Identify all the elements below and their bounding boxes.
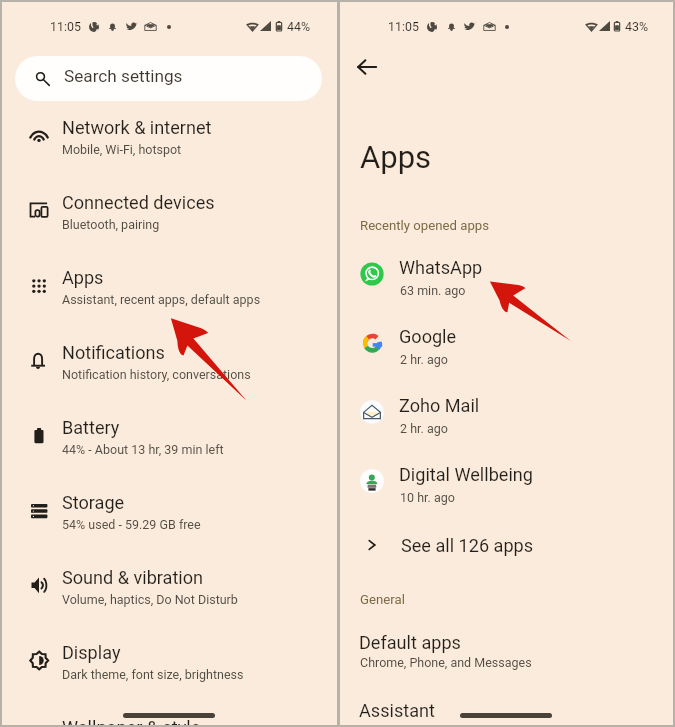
staticText: 54% used - 59.29 GB free: [62, 517, 201, 532]
staticText: 43%: [625, 19, 649, 34]
staticText: Notification history, conversations: [62, 367, 251, 382]
button[interactable]: [0, 627, 337, 702]
staticText: Apps: [360, 139, 432, 175]
staticText: Display: [62, 642, 121, 663]
staticText: Default apps: [359, 632, 461, 653]
button[interactable]: [341, 620, 675, 672]
staticText: Assistant, recent apps, default apps: [62, 292, 261, 307]
staticText: See all 126 apps: [401, 535, 534, 556]
staticText: Digital Wellbeing: [399, 464, 533, 485]
button[interactable]: [341, 516, 675, 564]
button[interactable]: [0, 252, 337, 327]
staticText: Battery: [62, 417, 120, 438]
staticText: Zoho Mail: [399, 395, 480, 416]
staticText: 11:05: [50, 19, 81, 34]
staticText: Dark theme, font size, brightness: [62, 667, 244, 682]
staticText: 44% - About 13 hr, 39 min left: [62, 442, 224, 457]
staticText: 44%: [287, 19, 311, 34]
button[interactable]: [341, 244, 675, 312]
button[interactable]: [0, 477, 337, 552]
button[interactable]: [0, 327, 337, 402]
button[interactable]: [0, 177, 337, 252]
staticText: Storage: [62, 492, 125, 513]
staticText: Assistant: [359, 700, 435, 721]
staticText: Search settings: [64, 66, 183, 86]
staticText: Apps: [62, 267, 104, 288]
staticText: WhatsApp: [399, 257, 483, 278]
staticText: Notifications: [62, 342, 165, 363]
button[interactable]: [341, 382, 675, 450]
staticText: 63 min. ago: [400, 283, 466, 298]
staticText: Mobile, Wi-Fi, hotspot: [62, 142, 182, 157]
button[interactable]: [341, 451, 675, 519]
staticText: Recently opened apps: [360, 218, 490, 233]
button[interactable]: [0, 102, 337, 177]
staticText: Chrome, Phone, and Messages: [360, 655, 532, 670]
staticText: Sound & vibration: [62, 567, 204, 588]
button[interactable]: Search settings: [15, 56, 322, 101]
staticText: General: [360, 592, 405, 607]
button[interactable]: [341, 313, 675, 381]
staticText: 2 hr. ago: [400, 421, 448, 436]
staticText: 10 hr. ago: [400, 490, 455, 505]
button[interactable]: [341, 688, 675, 727]
button[interactable]: Back: [347, 47, 387, 87]
button[interactable]: [0, 552, 337, 627]
staticText: Volume, haptics, Do Not Disturb: [62, 592, 238, 607]
button[interactable]: [0, 402, 337, 477]
button[interactable]: [0, 702, 337, 727]
staticText: Network & internet: [62, 117, 212, 138]
staticText: Google: [399, 326, 457, 347]
staticText: 11:05: [388, 19, 419, 34]
staticText: Wallpaper & style: [62, 717, 201, 727]
staticText: Bluetooth, pairing: [62, 217, 160, 232]
staticText: Connected devices: [62, 192, 215, 213]
staticText: 2 hr. ago: [400, 352, 448, 367]
